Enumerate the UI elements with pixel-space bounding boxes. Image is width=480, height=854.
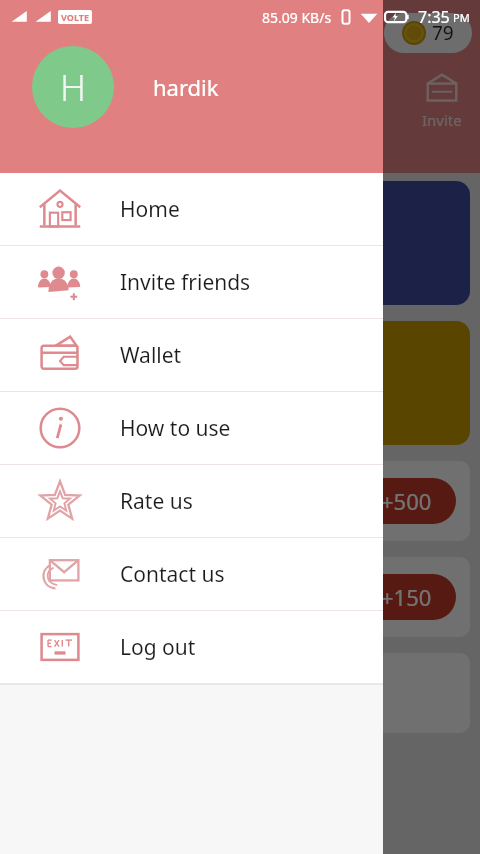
staticText: Invite xyxy=(422,110,462,130)
button[interactable]: Rate us xyxy=(0,465,383,537)
staticText: hardik xyxy=(153,72,219,102)
staticText: H xyxy=(60,63,87,112)
staticText: How to use xyxy=(120,414,231,443)
button[interactable]: +150 xyxy=(10,557,470,637)
staticText: +150 xyxy=(381,582,432,612)
button[interactable]: Invite xyxy=(422,72,462,130)
button[interactable]: Log out xyxy=(0,611,383,683)
button[interactable]: +500 xyxy=(10,461,470,541)
staticText: Invite friends xyxy=(120,268,251,297)
staticText: VOLTE xyxy=(61,11,89,23)
staticText: 79 xyxy=(432,20,454,46)
staticText: Wallet xyxy=(120,341,182,370)
staticText: CHECK IN xyxy=(189,399,291,429)
button[interactable]: Home xyxy=(0,173,383,245)
staticText: Log out xyxy=(120,633,196,662)
staticText: PM xyxy=(453,10,470,25)
button[interactable]: H xyxy=(0,0,383,173)
button[interactable]: Invite friends xyxy=(0,246,383,318)
staticText: 85.09 KB/s xyxy=(262,8,332,27)
staticText: 7:35 xyxy=(418,6,450,28)
button[interactable]: Contact us xyxy=(0,538,383,610)
staticText: +500 xyxy=(381,486,432,516)
button[interactable]: CHECK IN xyxy=(10,321,470,445)
staticText: Contact us xyxy=(120,560,225,589)
staticText: Home xyxy=(120,195,180,224)
button[interactable]: How to use xyxy=(0,392,383,464)
button[interactable]: Wallet xyxy=(0,319,383,391)
button[interactable] xyxy=(10,181,470,305)
button[interactable] xyxy=(10,653,470,733)
button[interactable]: 79 xyxy=(384,13,472,53)
staticText: Rate us xyxy=(120,487,193,516)
